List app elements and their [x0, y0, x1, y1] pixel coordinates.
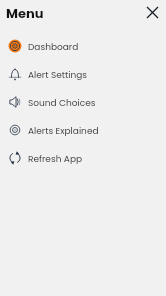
- staticText: Refresh App: [28, 153, 83, 166]
- button[interactable]: Sound Choices: [0, 88, 166, 116]
- button[interactable]: Close: [143, 3, 162, 22]
- staticText: Alert Settings: [28, 69, 88, 82]
- button[interactable]: Refresh App: [0, 144, 166, 172]
- button[interactable]: Dashboard: [0, 32, 166, 60]
- staticText: Menu: [6, 4, 44, 22]
- button[interactable]: Alert Settings: [0, 60, 166, 88]
- staticText: Sound Choices: [28, 97, 96, 110]
- staticText: Alerts Explained: [28, 125, 99, 138]
- staticText: Dashboard: [28, 41, 79, 54]
- button[interactable]: Alerts Explained: [0, 116, 166, 144]
